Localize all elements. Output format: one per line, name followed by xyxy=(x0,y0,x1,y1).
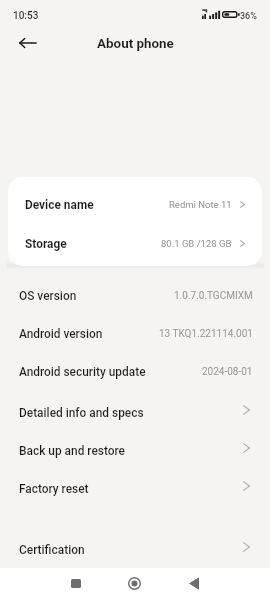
staticText: About phone xyxy=(97,36,174,52)
button[interactable]: Back xyxy=(10,25,46,61)
staticText: Redmi Note 11 xyxy=(169,199,232,210)
staticText: Back up and restore xyxy=(19,444,125,458)
staticText: 10:53 xyxy=(13,10,39,22)
button[interactable]: Android security update xyxy=(0,353,270,391)
staticText: 1.0.7.0.TGCMIXM xyxy=(174,290,253,302)
staticText: Certification xyxy=(19,543,85,557)
staticText: Device name xyxy=(25,198,94,212)
staticText: 36% xyxy=(240,11,257,22)
staticText: Android version xyxy=(19,327,103,341)
staticText: 80.1 GB /128 GB xyxy=(161,238,232,249)
button[interactable]: Back up and restore xyxy=(0,432,270,470)
button[interactable]: Recent apps xyxy=(60,567,92,599)
button[interactable]: Android version xyxy=(0,315,270,353)
button[interactable]: Factory reset xyxy=(0,470,270,508)
staticText: Storage xyxy=(25,237,67,251)
button[interactable]: Device name xyxy=(8,185,262,224)
button[interactable]: Storage xyxy=(8,224,262,263)
staticText: Detailed info and specs xyxy=(19,406,144,420)
button[interactable]: OS version xyxy=(0,277,270,315)
staticText: Factory reset xyxy=(19,482,89,496)
staticText: OS version xyxy=(19,289,77,303)
button[interactable]: Certification xyxy=(0,531,270,569)
staticText: Android security update xyxy=(19,365,146,379)
staticText: 13 TKQ1.221114.001 xyxy=(159,328,253,340)
button[interactable]: Home xyxy=(118,567,150,599)
staticText: 2024-08-01 xyxy=(202,366,253,378)
button[interactable]: Detailed info and specs xyxy=(0,394,270,432)
button[interactable]: Back xyxy=(178,567,210,599)
